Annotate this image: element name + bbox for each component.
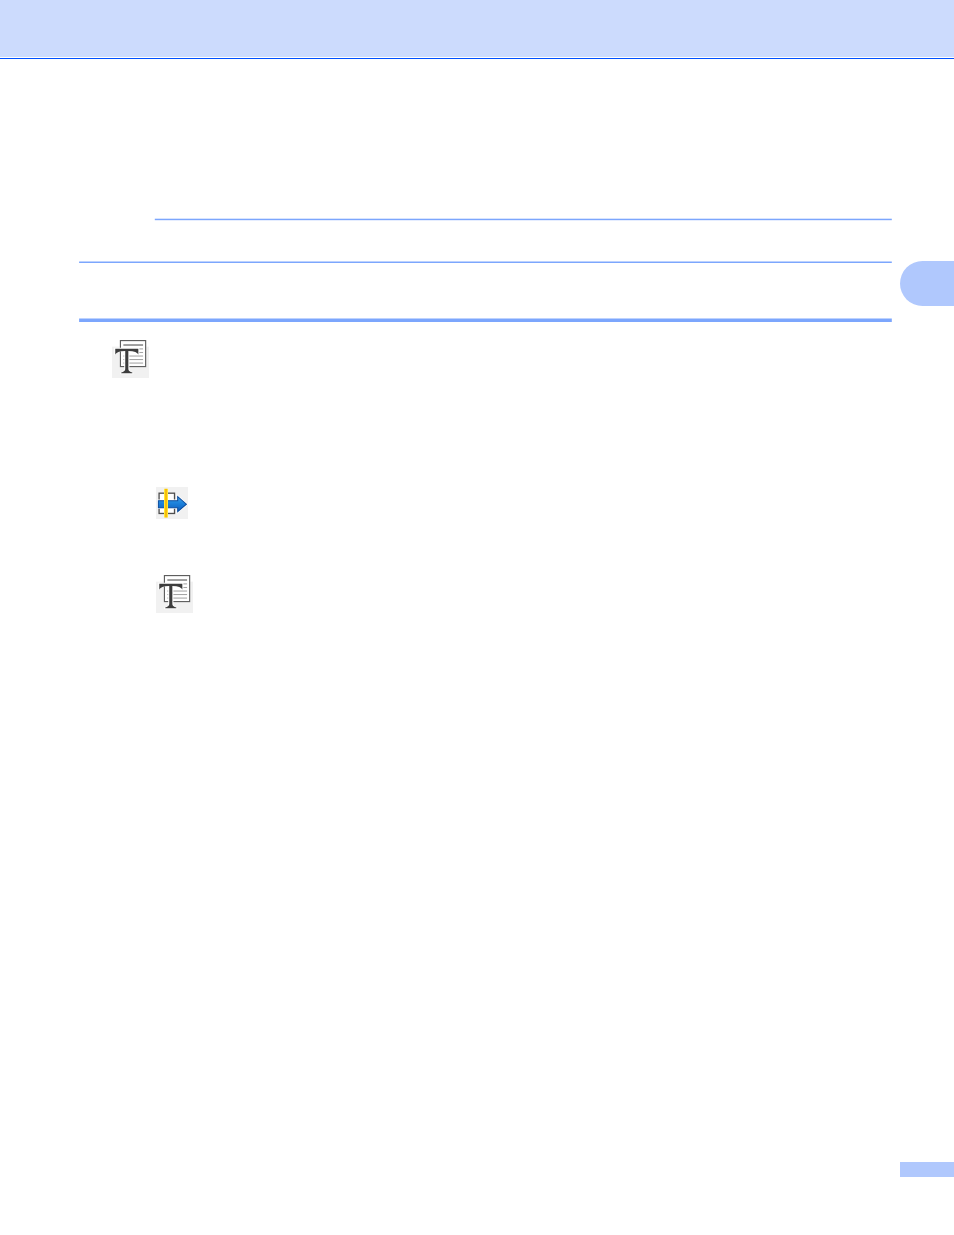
button[interactable]: Chapter tab — [900, 261, 954, 306]
button[interactable]: Export page — [156, 487, 188, 519]
button[interactable]: Text document — [112, 340, 149, 378]
button[interactable]: Text document — [156, 575, 193, 613]
